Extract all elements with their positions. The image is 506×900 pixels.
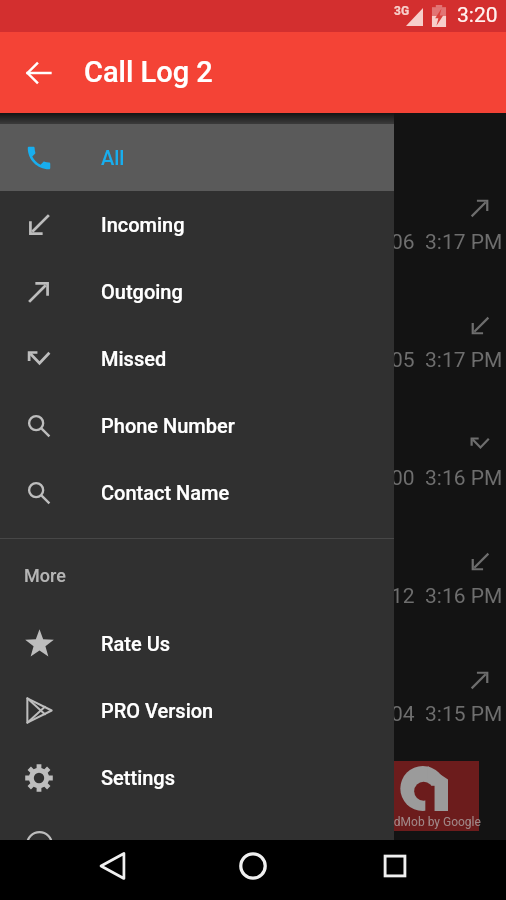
staticText: Rate Us — [101, 632, 171, 655]
staticText: 06 3:17 PM — [391, 230, 503, 255]
staticText: Outgoing — [101, 280, 183, 303]
button[interactable]: Contact Name — [0, 459, 394, 526]
button[interactable]: Incoming — [0, 191, 394, 258]
button[interactable]: Settings — [0, 744, 394, 811]
staticText: All — [101, 146, 125, 169]
button[interactable]: Outgoing — [0, 258, 394, 325]
button[interactable]: Recent apps — [365, 836, 425, 896]
button[interactable]: About — [0, 811, 394, 878]
staticText: Missed — [101, 347, 167, 370]
button[interactable]: Phone Number — [0, 392, 394, 459]
staticText: 05 3:17 PM — [391, 348, 503, 373]
button[interactable]: Missed — [0, 325, 394, 392]
staticText: More — [24, 565, 66, 586]
staticText: Incoming — [101, 213, 185, 236]
staticText: Settings — [101, 766, 176, 789]
staticText: AdMob by Google — [386, 815, 481, 829]
staticText: 04 3:15 PM — [391, 702, 503, 727]
staticText: Phone Number — [101, 414, 235, 437]
staticText: PRO Version — [101, 699, 214, 722]
staticText: 3G — [394, 4, 410, 18]
button[interactable]: All — [0, 124, 394, 191]
button[interactable]: Navigate up — [11, 45, 67, 101]
button[interactable]: PRO Version — [0, 677, 394, 744]
staticText: 12 3:16 PM — [391, 584, 503, 609]
button[interactable]: Home — [223, 836, 283, 896]
staticText: Call Log 2 — [84, 55, 213, 89]
button[interactable]: Rate Us — [0, 610, 394, 677]
staticText: Contact Name — [101, 481, 230, 504]
button[interactable]: Back — [83, 836, 143, 896]
staticText: 00 3:16 PM — [391, 466, 503, 491]
staticText: 3:20 — [457, 3, 498, 28]
